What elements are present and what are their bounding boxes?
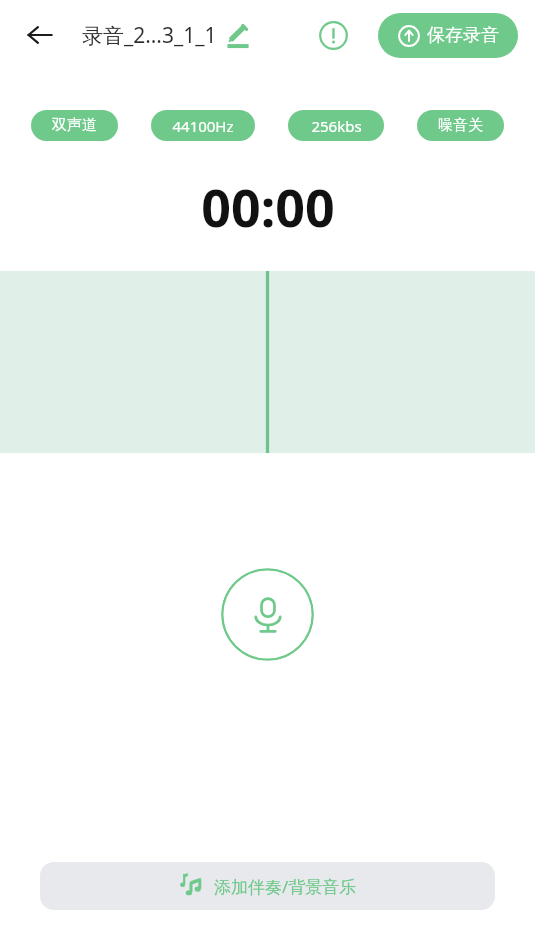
staticText: 双声道 (52, 116, 97, 135)
button[interactable]: Record (221, 568, 314, 661)
button[interactable]: 保存录音 (378, 13, 518, 58)
button[interactable]: 双声道 (31, 110, 118, 141)
staticText: 添加伴奏/背景音乐 (214, 875, 357, 898)
button[interactable]: 录音_2…3_1_1 (82, 21, 251, 50)
staticText: 44100Hz (172, 116, 234, 136)
staticText: 录音_2…3_1_1 (82, 21, 217, 50)
staticText: 噪音关 (438, 116, 483, 135)
staticText: 256kbs (311, 116, 362, 136)
button[interactable]: Info (311, 13, 355, 57)
staticText: 保存录音 (427, 24, 499, 47)
other: Rename (225, 23, 251, 49)
button[interactable]: 噪音关 (417, 110, 504, 141)
button[interactable]: 44100Hz (151, 110, 255, 141)
button[interactable]: 256kbs (288, 110, 384, 141)
button[interactable]: 添加伴奏/背景音乐 (40, 862, 495, 910)
button[interactable]: Back (16, 11, 64, 59)
staticText: 00:00 (201, 171, 335, 242)
